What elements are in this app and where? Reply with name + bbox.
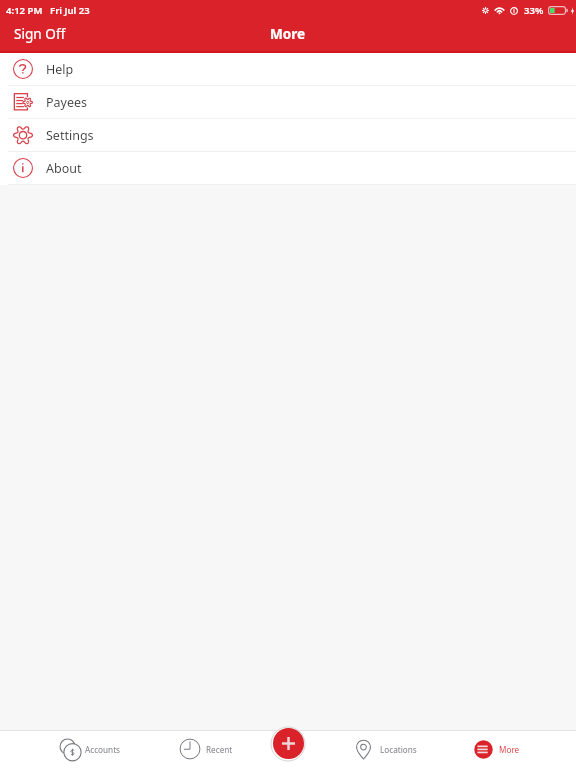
staticText: Fri Jul 23 bbox=[50, 4, 90, 17]
button[interactable]: About bbox=[0, 152, 576, 185]
staticText: More bbox=[270, 24, 306, 43]
button[interactable]: Sign Off bbox=[0, 20, 78, 53]
button[interactable]: Locations bbox=[353, 730, 417, 768]
staticText: Help bbox=[46, 61, 74, 78]
staticText: Accounts bbox=[85, 744, 121, 755]
button[interactable]: Payees bbox=[0, 86, 576, 119]
staticText: Payees bbox=[46, 94, 88, 111]
button[interactable]: Recent bbox=[179, 730, 233, 768]
staticText: Sign Off bbox=[14, 24, 66, 43]
button[interactable]: Settings bbox=[0, 119, 576, 152]
button[interactable]: More bbox=[473, 730, 520, 768]
button[interactable]: Accounts bbox=[57, 730, 121, 768]
staticText: 4:12 PM bbox=[6, 4, 43, 17]
staticText: Recent bbox=[206, 744, 233, 755]
button[interactable]: Help bbox=[0, 53, 576, 86]
staticText: 33% bbox=[524, 4, 544, 17]
staticText: Locations bbox=[380, 744, 417, 755]
staticText: Settings bbox=[46, 127, 94, 144]
button[interactable]: Add bbox=[273, 728, 304, 759]
staticText: About bbox=[46, 160, 82, 177]
staticText: More bbox=[499, 744, 520, 755]
